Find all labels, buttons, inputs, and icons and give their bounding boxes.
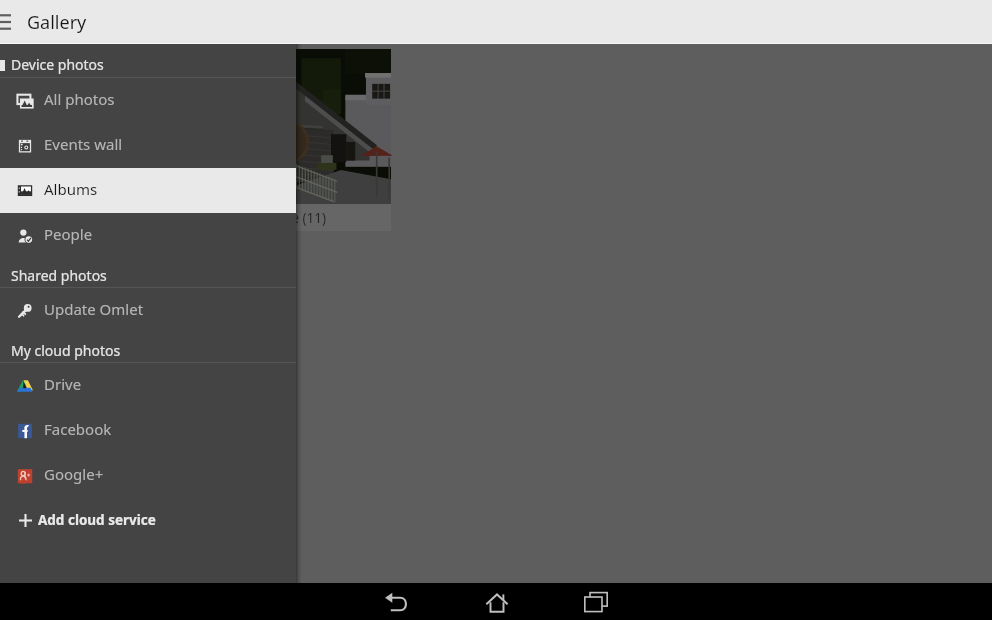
- button[interactable]: Mühle (11): [212, 49, 391, 231]
- staticText: Events wall: [44, 134, 123, 154]
- button[interactable]: Facebook: [0, 408, 296, 453]
- button[interactable]: Back: [357, 583, 437, 620]
- staticText: Gallery: [27, 10, 87, 35]
- button[interactable]: Albums: [0, 168, 296, 213]
- staticText: Drive: [44, 374, 82, 394]
- button[interactable]: Google+: [0, 453, 296, 498]
- staticText: Mühle (11): [259, 209, 327, 227]
- staticText: Add cloud service: [38, 511, 156, 529]
- staticText: Google+: [44, 464, 104, 484]
- button[interactable]: Add cloud service: [0, 498, 296, 543]
- staticText: Facebook: [44, 419, 112, 439]
- button[interactable]: Events wall: [0, 123, 296, 168]
- staticText: Albums: [44, 179, 98, 199]
- button[interactable]: Home: [457, 583, 537, 620]
- button[interactable]: Drive: [0, 363, 296, 408]
- button[interactable]: People: [0, 213, 296, 258]
- staticText: Update Omlet: [44, 299, 144, 319]
- staticText: People: [44, 224, 93, 244]
- button[interactable]: Recent apps: [556, 583, 636, 620]
- button[interactable]: Open navigation drawer: [0, 0, 26, 43]
- button[interactable]: Update Omlet: [0, 288, 296, 333]
- staticText: Device photos: [11, 55, 104, 74]
- button[interactable]: All photos: [0, 78, 296, 123]
- staticText: All photos: [44, 89, 115, 109]
- staticText: My cloud photos: [11, 341, 121, 360]
- staticText: Shared photos: [11, 266, 107, 285]
